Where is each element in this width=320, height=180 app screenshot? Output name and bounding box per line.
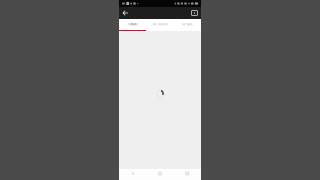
button[interactable]: My Teams <box>174 19 201 31</box>
button[interactable]: Contacts <box>119 19 146 31</box>
button[interactable]: Home <box>146 169 174 178</box>
staticText: Contacts <box>128 23 137 26</box>
button[interactable]: My Customers <box>146 19 174 31</box>
staticText: My Customers <box>152 23 167 26</box>
button[interactable]: Contact card <box>188 7 201 19</box>
button[interactable]: Back <box>119 7 132 19</box>
button[interactable]: Back <box>119 169 146 178</box>
button[interactable]: Recent apps <box>174 169 201 178</box>
staticText: My Teams <box>182 23 192 26</box>
